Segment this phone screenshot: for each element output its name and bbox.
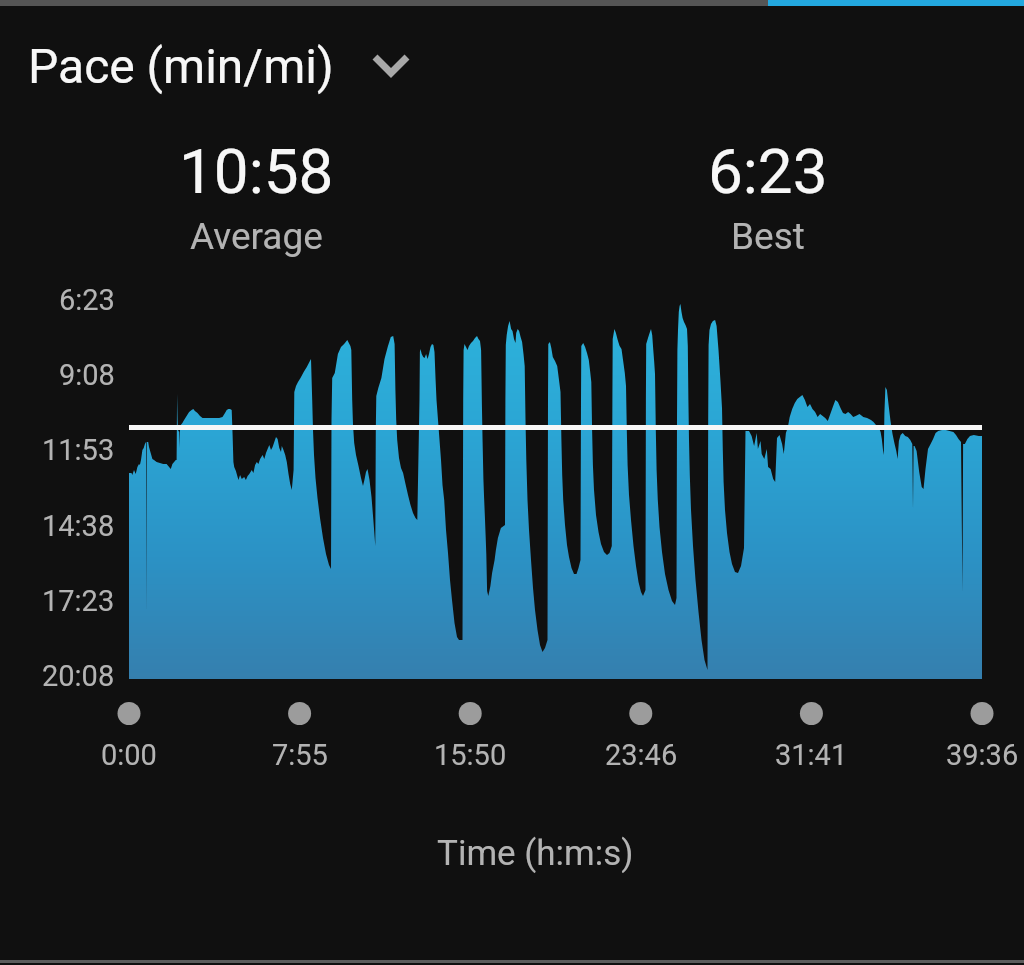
staticText: 6:23 [59, 283, 115, 317]
staticText: Best [731, 215, 805, 258]
button[interactable]: 10:58 [106, 135, 406, 255]
staticText: 39:36 [946, 738, 1019, 772]
staticText: 23:46 [605, 738, 678, 772]
staticText: 20:08 [42, 659, 115, 693]
staticText: 15:50 [434, 738, 507, 772]
staticText: 9:08 [59, 358, 115, 392]
staticText: 31:41 [775, 738, 848, 772]
button[interactable]: 6:23 [618, 135, 918, 255]
staticText: 6:23 [708, 135, 828, 195]
staticText: 17:23 [42, 584, 115, 618]
button[interactable]: Pace (min/mi) metric selector [18, 34, 411, 98]
staticText: 7:55 [272, 738, 328, 772]
staticText: Average [190, 215, 323, 258]
staticText: 10:58 [179, 135, 334, 195]
staticText: 14:38 [42, 509, 115, 543]
staticText: 11:53 [42, 433, 115, 467]
staticText: Time (h:m:s) [437, 833, 634, 874]
staticText: Pace (min/mi) [28, 38, 334, 94]
staticText: 0:00 [101, 738, 157, 772]
